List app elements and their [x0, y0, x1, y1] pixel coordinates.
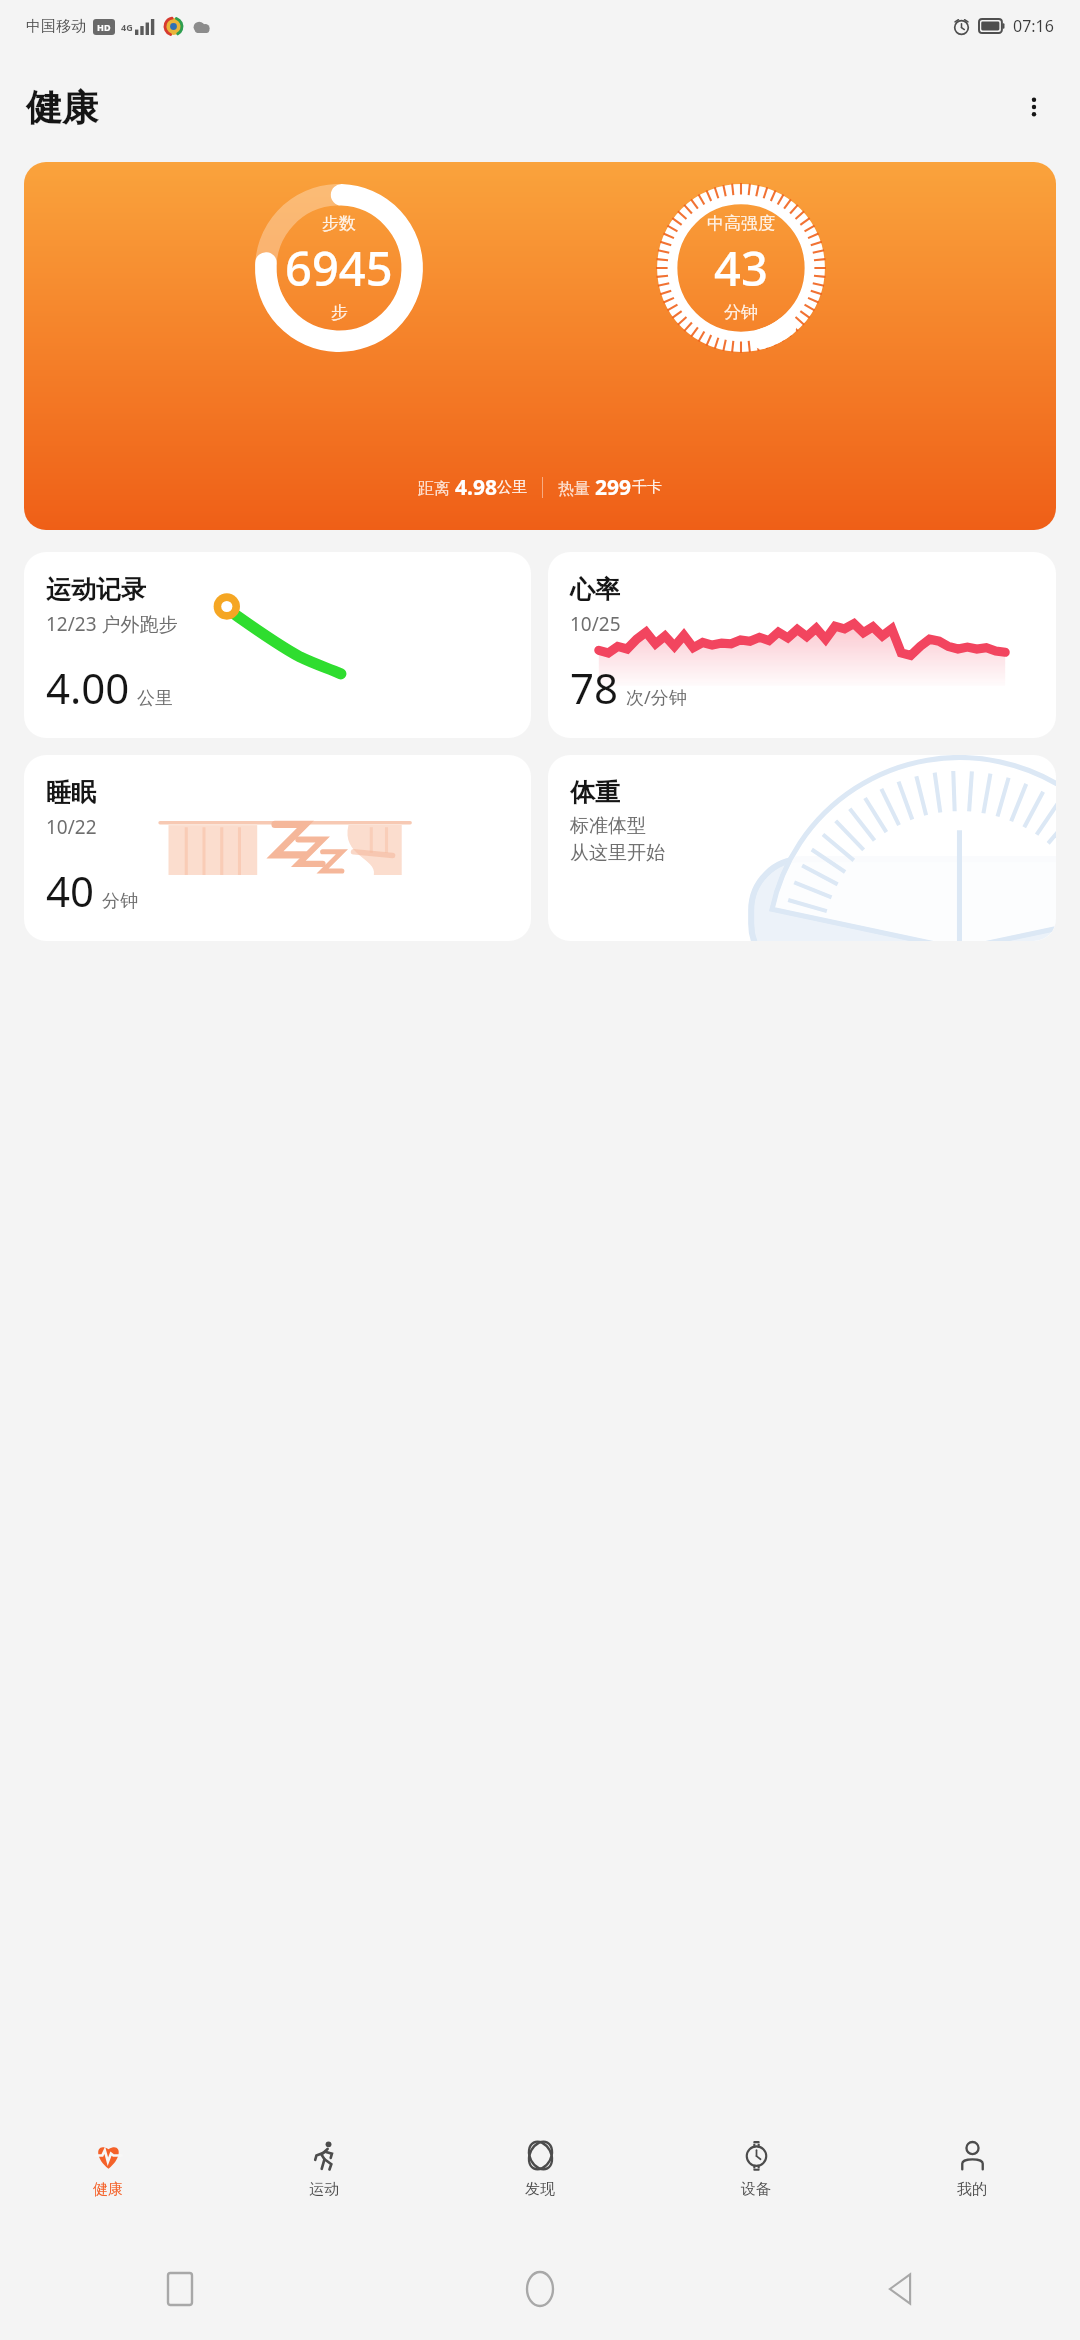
- button[interactable]: 发现: [432, 2130, 648, 2209]
- button[interactable]: Home: [360, 2238, 720, 2340]
- staticText: 4.00: [46, 659, 130, 716]
- staticText: 健康: [26, 85, 98, 130]
- staticText: 43: [714, 236, 768, 300]
- staticText: 299: [595, 473, 632, 502]
- staticText: 次/分钟: [626, 685, 687, 710]
- staticText: 步: [331, 302, 348, 323]
- button[interactable]: Recents: [0, 2238, 360, 2340]
- staticText: 公里: [497, 478, 527, 497]
- staticText: 10/22: [46, 814, 97, 840]
- button[interactable]: 步数: [24, 162, 1056, 530]
- staticText: 运动: [309, 2180, 339, 2199]
- staticText: 12/23 户外跑步: [46, 611, 178, 637]
- button[interactable]: 设备: [648, 2130, 864, 2209]
- button[interactable]: 健康: [0, 2130, 216, 2209]
- staticText: 标准体型: [570, 814, 646, 838]
- staticText: 设备: [741, 2180, 771, 2199]
- staticText: 4.98: [455, 473, 497, 502]
- button[interactable]: 睡眠: [24, 755, 531, 941]
- staticText: 体重: [570, 777, 620, 808]
- staticText: 07:16: [1013, 15, 1054, 37]
- staticText: 中高强度: [707, 213, 775, 234]
- staticText: 从这里开始: [570, 841, 665, 865]
- staticText: 4G: [121, 21, 133, 33]
- button[interactable]: Back: [720, 2238, 1080, 2340]
- button[interactable]: 我的: [864, 2130, 1080, 2209]
- staticText: 78: [570, 659, 619, 716]
- button[interactable]: 心率: [548, 552, 1056, 738]
- staticText: 中国移动: [26, 17, 86, 36]
- staticText: 距离: [418, 477, 455, 499]
- staticText: 分钟: [724, 302, 758, 323]
- staticText: 分钟: [102, 890, 138, 913]
- button[interactable]: 运动: [216, 2130, 432, 2209]
- staticText: 发现: [525, 2180, 555, 2199]
- staticText: 公里: [137, 687, 173, 710]
- staticText: HD: [97, 21, 111, 33]
- staticText: 40: [46, 862, 95, 919]
- staticText: 心率: [570, 574, 620, 605]
- staticText: 6945: [285, 236, 393, 300]
- staticText: 千卡: [632, 478, 662, 497]
- staticText: 健康: [93, 2180, 123, 2199]
- button[interactable]: 体重: [548, 755, 1056, 941]
- staticText: 步数: [322, 213, 356, 234]
- button[interactable]: More options: [1010, 83, 1058, 131]
- button[interactable]: 运动记录: [24, 552, 531, 738]
- staticText: 我的: [957, 2180, 987, 2199]
- staticText: 睡眠: [46, 777, 96, 808]
- staticText: 运动记录: [46, 574, 146, 605]
- staticText: 10/25: [570, 611, 621, 637]
- staticText: 热量: [558, 477, 595, 499]
